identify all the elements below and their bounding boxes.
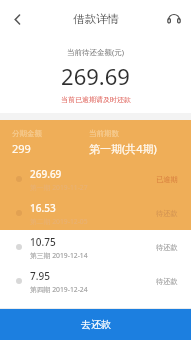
staticText: 269.69 — [30, 167, 62, 181]
staticText: 待还款 — [156, 243, 178, 252]
staticText: 16.53 — [30, 201, 56, 215]
staticText: 待还款 — [156, 277, 178, 286]
staticText: 269.69 — [61, 61, 130, 91]
button[interactable]: 去还款 — [0, 309, 191, 340]
staticText: 第三期 2019-12-14 — [30, 251, 88, 260]
staticText: 当前已逾期请及时还款 — [61, 95, 131, 104]
staticText: 借款详情 — [73, 12, 119, 26]
staticText: 第二期 2019-12-05 — [30, 217, 88, 226]
staticText: 已逾期 — [156, 175, 178, 184]
staticText: 299 — [12, 141, 31, 156]
staticText: 第四期 2019-12-24 — [30, 285, 88, 294]
staticText: 当前期数 — [89, 129, 119, 138]
staticText: 10.75 — [30, 235, 56, 249]
button[interactable]: Back — [0, 2, 34, 36]
button[interactable]: 16.53 — [0, 196, 191, 230]
staticText: 当前待还金额(元) — [67, 47, 124, 57]
staticText: 去还款 — [81, 318, 111, 331]
staticText: 第一期 2019-11-27 — [30, 183, 88, 192]
button[interactable]: 7.95 — [0, 264, 191, 298]
staticText: 待还款 — [156, 209, 178, 218]
staticText: 分期金额 — [12, 129, 42, 138]
button[interactable]: Customer service — [157, 2, 191, 36]
button[interactable]: 269.69 — [0, 162, 191, 196]
staticText: 第一期(共4期) — [89, 141, 157, 156]
staticText: 7.95 — [30, 269, 50, 283]
button[interactable]: 10.75 — [0, 230, 191, 264]
